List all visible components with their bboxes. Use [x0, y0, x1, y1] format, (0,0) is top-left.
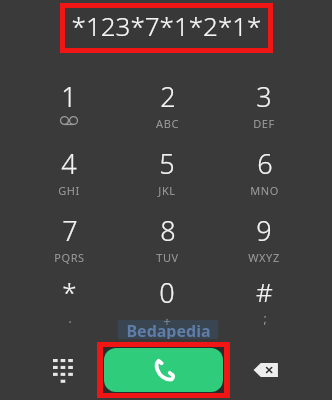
staticText: ; [263, 310, 267, 326]
staticText: *123*7*1*2*1*1# [65, 8, 268, 48]
button[interactable]: 9 [218, 212, 310, 274]
button[interactable]: 0 [121, 274, 213, 336]
staticText: MNO [250, 183, 279, 198]
staticText: 1 [61, 78, 77, 115]
staticText: 0 [159, 274, 175, 311]
button[interactable]: Delete [248, 352, 284, 388]
staticText: 7 [62, 212, 78, 249]
button[interactable]: 2 [121, 78, 213, 140]
button[interactable]: 6 [218, 145, 310, 207]
staticText: PQRS [54, 250, 85, 265]
staticText: * [62, 274, 77, 309]
button[interactable]: 1 [23, 78, 115, 140]
button[interactable]: 5 [121, 145, 213, 207]
staticText: 5 [159, 145, 175, 182]
staticText: DEF [253, 116, 275, 131]
button[interactable]: 7 [23, 212, 115, 274]
button[interactable]: 3 [218, 78, 310, 140]
button[interactable]: Call [104, 348, 223, 392]
staticText: GHI [58, 183, 80, 198]
button[interactable]: *123*7*1*2*1*1# [65, 8, 268, 48]
staticText: # [256, 274, 273, 309]
staticText: Bedapedia [126, 320, 211, 339]
staticText: + [163, 312, 171, 330]
staticText: TUV [156, 250, 179, 265]
staticText: 8 [160, 212, 176, 249]
staticText: 3 [256, 78, 272, 115]
staticText: 2 [160, 78, 176, 115]
button[interactable]: Keypad [46, 352, 80, 386]
staticText: 6 [257, 145, 273, 182]
staticText: WXYZ [248, 250, 280, 265]
staticText: . [68, 310, 72, 326]
staticText: 4 [61, 145, 77, 182]
staticText: 9 [256, 212, 272, 249]
button[interactable]: 8 [121, 212, 213, 274]
button[interactable]: 4 [23, 145, 115, 207]
staticText: ABC [156, 116, 179, 131]
staticText: JKL [158, 183, 176, 198]
button[interactable]: # [218, 274, 310, 336]
button[interactable]: * [23, 274, 115, 336]
